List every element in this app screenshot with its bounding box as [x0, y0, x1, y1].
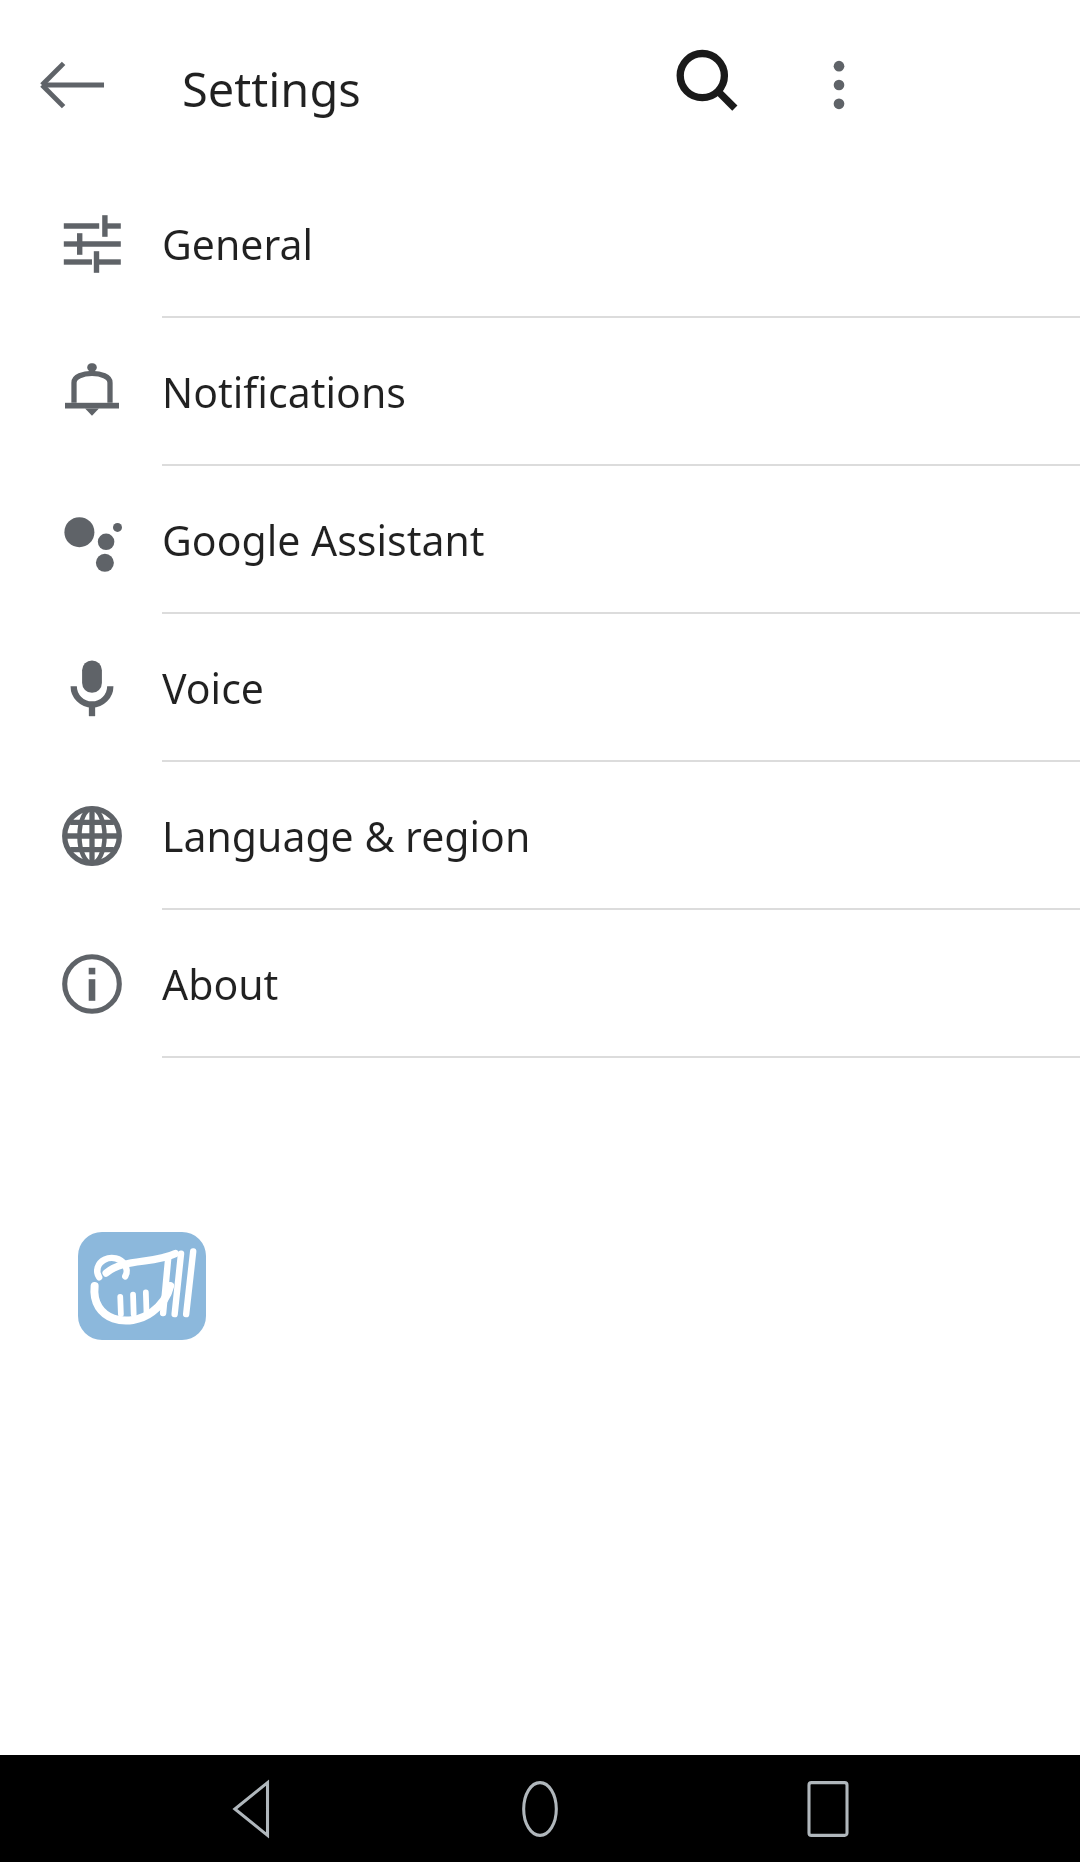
button[interactable]: Recent apps	[780, 1779, 876, 1839]
staticText: Notifications	[162, 364, 406, 420]
button[interactable]: Search	[660, 38, 754, 132]
button[interactable]: Back	[208, 1779, 304, 1839]
button[interactable]	[0, 762, 1080, 910]
button[interactable]	[0, 170, 1080, 318]
button[interactable]	[0, 910, 1080, 1058]
staticText: Google Assistant	[162, 512, 485, 568]
button[interactable]	[0, 318, 1080, 466]
staticText: About	[162, 956, 279, 1012]
button[interactable]: Back	[26, 38, 120, 132]
button[interactable]	[0, 614, 1080, 762]
button[interactable]: More options	[796, 38, 882, 132]
button[interactable]	[0, 466, 1080, 614]
staticText: Voice	[162, 660, 264, 716]
staticText: Language & region	[162, 808, 531, 864]
button[interactable]: Home	[492, 1779, 588, 1839]
staticText: Settings	[182, 57, 361, 121]
staticText: General	[162, 216, 314, 272]
button[interactable]: App logo	[78, 1232, 206, 1340]
